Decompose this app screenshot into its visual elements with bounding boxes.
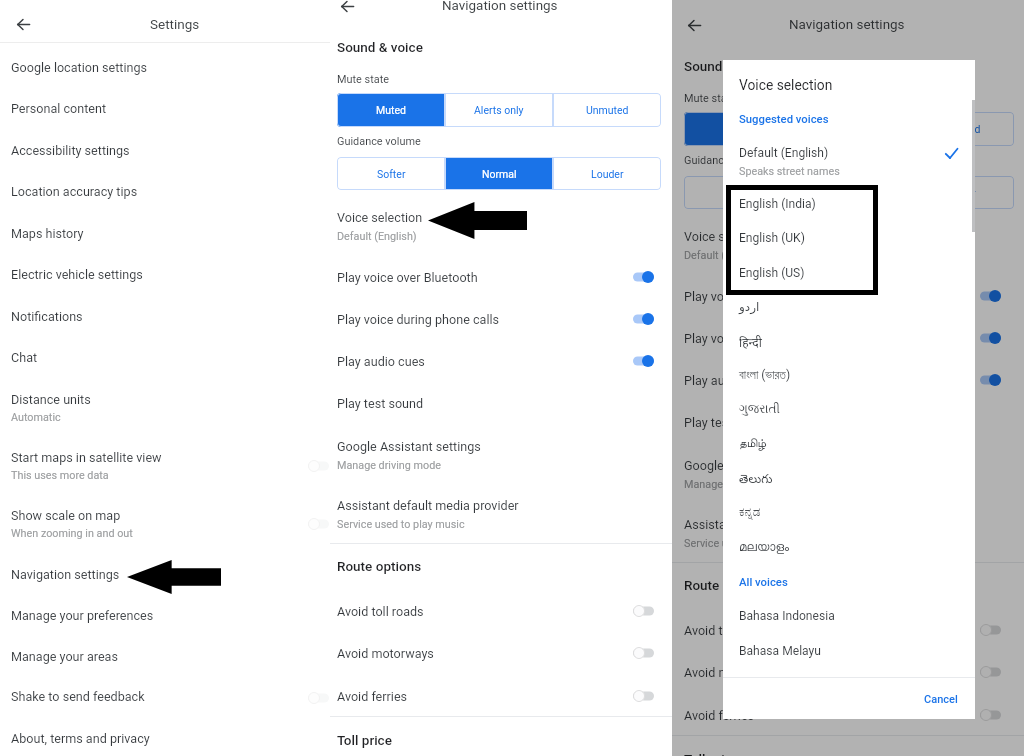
button[interactable] [0,88,330,129]
staticText: Chat [11,350,38,365]
staticText: Softer [377,168,406,180]
button[interactable] [723,221,975,255]
staticText: Manage your areas [11,649,118,664]
button[interactable]: Unmuted [904,112,1014,146]
button[interactable]: Softer [337,157,445,190]
staticText: Toll price [337,732,392,748]
button[interactable] [0,296,330,337]
button[interactable]: Normal [445,157,553,190]
button[interactable]: Back [683,14,705,36]
button[interactable] [330,434,672,482]
button[interactable] [0,337,330,378]
button[interactable] [672,694,1024,736]
staticText: English (US) [739,266,805,280]
button[interactable] [0,213,330,254]
button[interactable] [0,676,330,717]
button[interactable]: Back [336,0,358,17]
button[interactable] [723,634,975,668]
button[interactable] [672,275,1024,317]
button[interactable] [723,290,975,324]
button[interactable] [330,256,672,298]
button[interactable] [723,496,975,530]
staticText: Cancel [924,693,958,706]
button[interactable] [672,401,1024,443]
button[interactable] [0,436,330,482]
staticText: తెలుగు [739,472,773,488]
button[interactable] [723,393,975,427]
button[interactable] [330,382,672,424]
staticText: Voice selection [684,229,770,244]
button[interactable]: Louder [904,176,1014,209]
staticText: Speaks street names [739,165,840,178]
staticText: Play voice during phone calls [337,312,500,327]
button[interactable] [330,340,672,382]
button[interactable]: Cancel [913,686,968,712]
staticText: Avoid toll roads [684,623,771,638]
staticText: Toll price [684,751,739,756]
staticText: Play test sound [337,396,424,411]
button[interactable] [723,256,975,290]
button[interactable] [330,590,672,632]
button[interactable] [0,130,330,171]
button[interactable] [0,378,330,424]
staticText: Service used to play music [337,518,465,531]
staticText: ಕನ್ನಡ [739,506,761,518]
button[interactable] [723,427,975,461]
button[interactable] [672,359,1024,401]
staticText: Distance units [11,392,91,407]
staticText: Play voice over Bluetooth [684,289,825,304]
staticText: Louder [591,168,624,180]
button[interactable] [672,512,1024,560]
button[interactable] [672,453,1024,501]
button[interactable] [723,531,975,565]
button[interactable] [723,187,975,221]
staticText: Voice selection [739,77,833,93]
staticText: Settings [150,16,200,32]
button[interactable]: Softer [684,176,794,209]
button[interactable] [723,599,975,633]
button[interactable] [0,254,330,295]
button[interactable]: Alerts only [445,93,553,127]
button[interactable] [723,138,975,174]
staticText: Muted [376,104,406,116]
button[interactable] [0,494,330,540]
staticText: Route options [684,577,769,593]
staticText: All voices [739,576,788,589]
button[interactable] [672,317,1024,359]
staticText: Voice selection [337,210,423,225]
button[interactable]: Alerts only [794,112,904,146]
button[interactable] [330,632,672,674]
staticText: Sound & voice [337,39,423,55]
button[interactable] [330,675,672,717]
staticText: Avoid toll roads [337,604,424,619]
button[interactable]: Louder [553,157,661,190]
staticText: Manage driving mode [684,478,788,491]
button[interactable] [723,358,975,392]
button[interactable] [0,595,330,636]
button[interactable]: Normal [794,176,904,209]
button[interactable] [330,298,672,340]
button[interactable] [723,462,975,496]
button[interactable] [0,171,330,212]
staticText: Navigation settings [442,0,558,14]
button[interactable] [0,47,330,88]
button[interactable] [330,205,672,253]
button[interactable]: Unmuted [553,93,661,127]
staticText: About, terms and privacy [11,731,150,746]
button[interactable] [330,493,672,541]
staticText: Default (English) [337,230,417,243]
staticText: Avoid ferries [684,708,755,723]
button[interactable] [672,651,1024,693]
staticText: Manage your preferences [11,608,154,623]
button[interactable]: Muted [337,93,445,127]
button[interactable]: Back [12,13,34,35]
button[interactable] [0,554,330,595]
button[interactable]: Muted [684,112,794,146]
button[interactable] [723,324,975,358]
button[interactable] [672,224,1024,272]
button[interactable] [0,636,330,677]
button[interactable] [0,718,330,756]
staticText: Sound & voice [684,58,770,74]
button[interactable] [672,609,1024,651]
